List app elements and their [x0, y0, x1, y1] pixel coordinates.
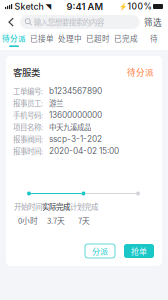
- staticText: 输入您想要搜索的内容: [34, 17, 104, 27]
- staticText: 2020-04-02 15:00: [49, 146, 119, 156]
- staticText: 报事时间:: [13, 146, 43, 156]
- staticText: 报事员工:: [13, 98, 43, 108]
- staticText: 已接单: [30, 33, 54, 44]
- staticText: 13600000000: [49, 110, 102, 120]
- staticText: 报事阀间:: [13, 134, 43, 144]
- staticText: 计划完成: [70, 201, 98, 212]
- staticText: 游兰: [49, 98, 63, 108]
- button[interactable]: 待: [140, 31, 168, 50]
- staticText: 手机号码:: [13, 110, 43, 120]
- staticText: ◥: [45, 2, 51, 11]
- staticText: 待分派: [127, 66, 154, 78]
- button[interactable]: 已超时: [84, 31, 112, 50]
- staticText: 已超时: [86, 33, 110, 44]
- button[interactable]: 处理中: [56, 31, 84, 50]
- staticText: 9:41 AM: [67, 1, 104, 12]
- button[interactable]: Back: [3, 13, 20, 30]
- staticText: 开始时间: [14, 201, 42, 212]
- staticText: 3.7天: [47, 215, 65, 226]
- staticText: 分派: [92, 245, 108, 257]
- staticText: 抢单: [131, 245, 147, 257]
- button[interactable]: 已接单: [28, 31, 56, 50]
- staticText: 待: [150, 33, 158, 44]
- staticText: 待分派: [2, 33, 26, 44]
- button[interactable]: 筛选: [139, 13, 163, 30]
- staticText: 已完成: [114, 33, 138, 44]
- button[interactable]: 抢单: [124, 244, 154, 258]
- staticText: 0小时: [18, 215, 38, 226]
- staticText: 100%: [127, 1, 151, 12]
- button[interactable]: 已完成: [112, 31, 140, 50]
- staticText: sscp-3-1-202: [49, 134, 102, 144]
- staticText: ⚡: [119, 3, 127, 10]
- staticText: 处理中: [58, 33, 82, 44]
- staticText: 7天: [78, 215, 90, 226]
- staticText: 工单编号:: [13, 86, 43, 96]
- staticText: 中天九溪成品: [49, 122, 91, 132]
- staticText: Sketch: [14, 1, 43, 12]
- staticText: 筛选: [144, 16, 162, 28]
- button[interactable]: 待分派: [0, 31, 28, 50]
- staticText: 实际完成: [42, 201, 70, 212]
- staticText: 客服类: [13, 65, 40, 79]
- staticText: 项目名称:: [13, 122, 43, 132]
- button[interactable]: 分派: [85, 244, 115, 258]
- staticText: b1234567890: [49, 86, 102, 96]
